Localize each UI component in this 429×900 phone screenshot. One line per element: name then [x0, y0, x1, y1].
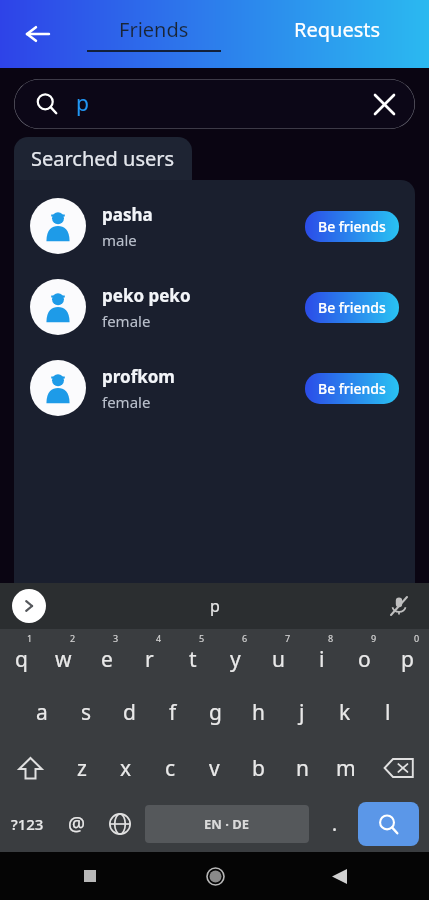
button[interactable]: peko peko [14, 275, 415, 339]
staticText: 4 [156, 632, 162, 644]
staticText: profkom [102, 365, 175, 388]
staticText: 7 [285, 632, 291, 644]
button[interactable]: d [108, 684, 151, 740]
staticText: g [209, 698, 222, 727]
button[interactable]: p [14, 79, 415, 129]
staticText: peko peko [102, 284, 191, 307]
staticText: r [145, 645, 154, 674]
button[interactable]: 8 [300, 629, 343, 684]
staticText: female [102, 392, 151, 412]
button[interactable]: Home [195, 856, 235, 896]
button[interactable]: @ [55, 796, 98, 852]
staticText: 0 [414, 632, 420, 644]
button[interactable]: Backspace [368, 740, 429, 796]
button[interactable]: Back [14, 10, 62, 58]
staticText: Be friends [318, 379, 386, 398]
staticText: male [102, 230, 137, 250]
staticText: f [169, 698, 177, 727]
staticText: x [120, 754, 132, 783]
staticText: 2 [70, 632, 76, 644]
staticText: v [209, 754, 220, 783]
staticText: Requests [294, 16, 381, 43]
button[interactable]: s [64, 684, 108, 740]
button[interactable]: 5 [171, 629, 214, 684]
button[interactable]: 4 [128, 629, 171, 684]
staticText: w [55, 645, 72, 674]
button[interactable]: profkom [14, 356, 415, 420]
staticText: 6 [242, 632, 248, 644]
staticText: a [36, 698, 48, 727]
staticText: pasha [102, 203, 153, 226]
button[interactable]: f [151, 684, 194, 740]
staticText: p [401, 645, 414, 674]
staticText: p [210, 595, 220, 617]
button[interactable]: j [280, 684, 323, 740]
staticText: i [319, 645, 325, 674]
button[interactable]: Requests [245, 0, 429, 68]
button[interactable]: 6 [214, 629, 257, 684]
staticText: n [296, 754, 309, 783]
staticText: @ [68, 811, 86, 837]
button[interactable]: Searched users [14, 137, 192, 180]
button[interactable]: EN · DE [145, 805, 309, 843]
button[interactable]: Voice input disabled [383, 590, 415, 622]
button[interactable]: Be friends [305, 211, 399, 242]
button[interactable]: c [148, 740, 192, 796]
button[interactable]: Back [319, 856, 359, 896]
button[interactable]: 9 [343, 629, 386, 684]
staticText: . [332, 811, 338, 837]
staticText: p [76, 89, 89, 118]
button[interactable]: b [236, 740, 280, 796]
button[interactable]: Recents [70, 856, 110, 896]
staticText: l [385, 698, 391, 727]
button[interactable]: v [192, 740, 236, 796]
button[interactable]: pasha [14, 194, 415, 258]
staticText: female [102, 311, 151, 331]
staticText: b [252, 754, 265, 783]
staticText: 3 [113, 632, 119, 644]
staticText: 8 [328, 632, 334, 644]
staticText: Friends [119, 16, 189, 43]
staticText: h [252, 698, 265, 727]
button[interactable]: n [280, 740, 324, 796]
button[interactable]: Clear search [367, 87, 401, 121]
staticText: o [358, 645, 371, 674]
staticText: j [299, 698, 305, 727]
button[interactable]: l [366, 684, 409, 740]
button[interactable]: Change language [98, 796, 141, 852]
staticText: t [189, 645, 197, 674]
button[interactable]: Be friends [305, 373, 399, 404]
staticText: 5 [199, 632, 205, 644]
button[interactable]: Friends [62, 0, 245, 68]
button[interactable]: z [60, 740, 104, 796]
button[interactable]: 0 [386, 629, 429, 684]
button[interactable]: Shift [0, 740, 60, 796]
staticText: s [81, 698, 92, 727]
button[interactable]: x [104, 740, 148, 796]
staticText: m [336, 754, 356, 783]
button[interactable]: ?123 [0, 796, 55, 852]
button[interactable]: m [324, 740, 368, 796]
staticText: c [165, 754, 176, 783]
button[interactable]: 7 [257, 629, 300, 684]
staticText: EN · DE [204, 815, 250, 833]
button[interactable]: Search [358, 802, 419, 846]
button[interactable]: 2 [42, 629, 85, 684]
staticText: 1 [27, 632, 33, 644]
staticText: k [339, 698, 351, 727]
button[interactable]: h [237, 684, 280, 740]
button[interactable]: 1 [0, 629, 42, 684]
button[interactable]: a [20, 684, 64, 740]
staticText: z [77, 754, 87, 783]
button[interactable]: 3 [85, 629, 128, 684]
button[interactable]: Be friends [305, 292, 399, 323]
staticText: Searched users [31, 145, 175, 172]
staticText: Be friends [318, 298, 386, 317]
button[interactable]: . [313, 796, 356, 852]
button[interactable]: k [323, 684, 366, 740]
button[interactable]: g [194, 684, 237, 740]
button[interactable]: Expand toolbar [12, 589, 46, 623]
staticText: ?123 [11, 814, 44, 834]
staticText: y [230, 645, 241, 674]
staticText: 9 [371, 632, 377, 644]
